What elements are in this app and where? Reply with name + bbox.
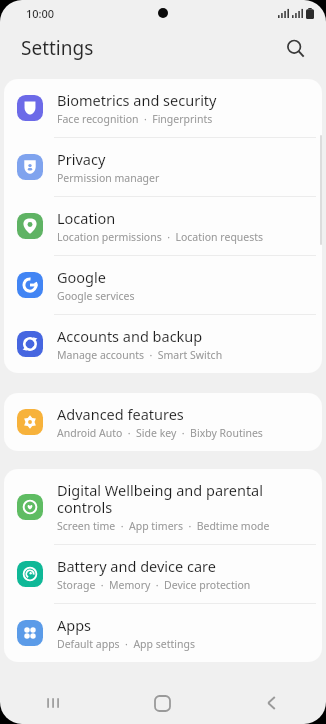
button[interactable]: Battery and device care <box>4 545 322 603</box>
staticText: Settings <box>21 35 94 61</box>
staticText: Android Auto · Side key · Bixby Routines <box>57 426 263 440</box>
button[interactable]: Location <box>4 197 322 255</box>
staticText: Screen time · App timers · Bedtime mode <box>57 519 270 533</box>
staticText: Apps <box>57 615 92 635</box>
staticText: Default apps · App settings <box>57 637 195 651</box>
staticText: Google <box>57 267 106 287</box>
staticText: Manage accounts · Smart Switch <box>57 348 223 362</box>
staticText: Storage · Memory · Device protection <box>57 578 251 592</box>
button[interactable]: Search <box>278 31 312 65</box>
staticText: Location <box>57 208 116 228</box>
button[interactable]: Advanced features <box>4 393 322 451</box>
button[interactable]: Privacy <box>4 138 322 196</box>
button[interactable]: Back <box>217 682 326 724</box>
button[interactable]: Recents <box>0 682 108 724</box>
button[interactable]: Apps <box>4 604 322 662</box>
staticText: Permission manager <box>57 171 160 185</box>
staticText: Location permissions · Location requests <box>57 230 264 244</box>
button[interactable]: Accounts and backup <box>4 315 322 373</box>
staticText: Biometrics and security <box>57 90 217 110</box>
staticText: Advanced features <box>57 404 184 424</box>
staticText: Digital Wellbeing and parental controls <box>57 480 310 517</box>
staticText: Google services <box>57 289 135 303</box>
staticText: Privacy <box>57 149 106 169</box>
button[interactable]: Digital Wellbeing and parental controls <box>4 469 322 544</box>
staticText: 10:00 <box>26 6 55 21</box>
button[interactable]: Home <box>108 682 217 724</box>
staticText: Accounts and backup <box>57 326 203 346</box>
button[interactable]: Google <box>4 256 322 314</box>
staticText: Face recognition · Fingerprints <box>57 112 213 126</box>
button[interactable]: Biometrics and security <box>4 79 322 137</box>
staticText: Battery and device care <box>57 556 216 576</box>
